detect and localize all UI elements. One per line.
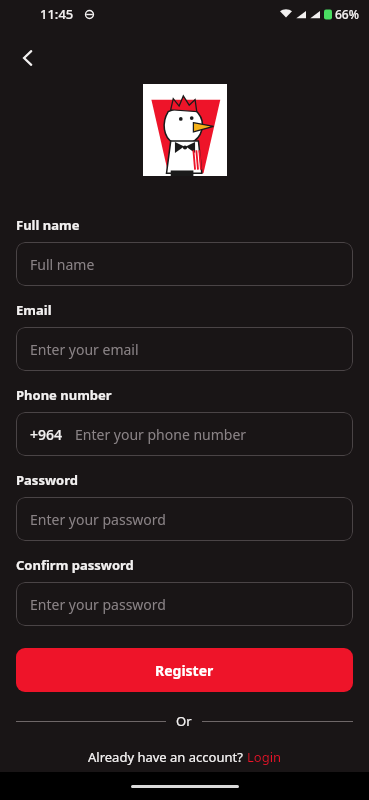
staticText: Already have an account? [88,748,247,766]
staticText: Enter your phone number [75,425,247,444]
staticText: Email [16,301,52,319]
button[interactable]: Enter your email [16,327,353,371]
staticText: Or [176,712,192,730]
staticText: 66% [335,6,359,22]
button[interactable]: Back [8,38,48,78]
staticText: Enter your password [30,510,166,529]
staticText: Login [247,748,282,766]
staticText: Enter your password [30,595,166,614]
staticText: Enter your email [30,340,139,359]
button[interactable]: Enter your password [16,497,353,541]
button[interactable]: Enter your password [16,582,353,626]
staticText: +964 [30,425,63,444]
staticText: Full name [16,216,80,234]
staticText: Password [16,471,78,489]
button[interactable]: +964 [16,412,353,456]
staticText: Confirm password [16,556,134,574]
button[interactable]: Register [16,648,353,692]
staticText: Phone number [16,386,112,404]
staticText: Full name [30,255,95,274]
button[interactable]: Login [247,748,282,766]
button[interactable]: Full name [16,242,353,286]
staticText: Register [155,661,214,680]
staticText: 11:45 [40,5,74,23]
